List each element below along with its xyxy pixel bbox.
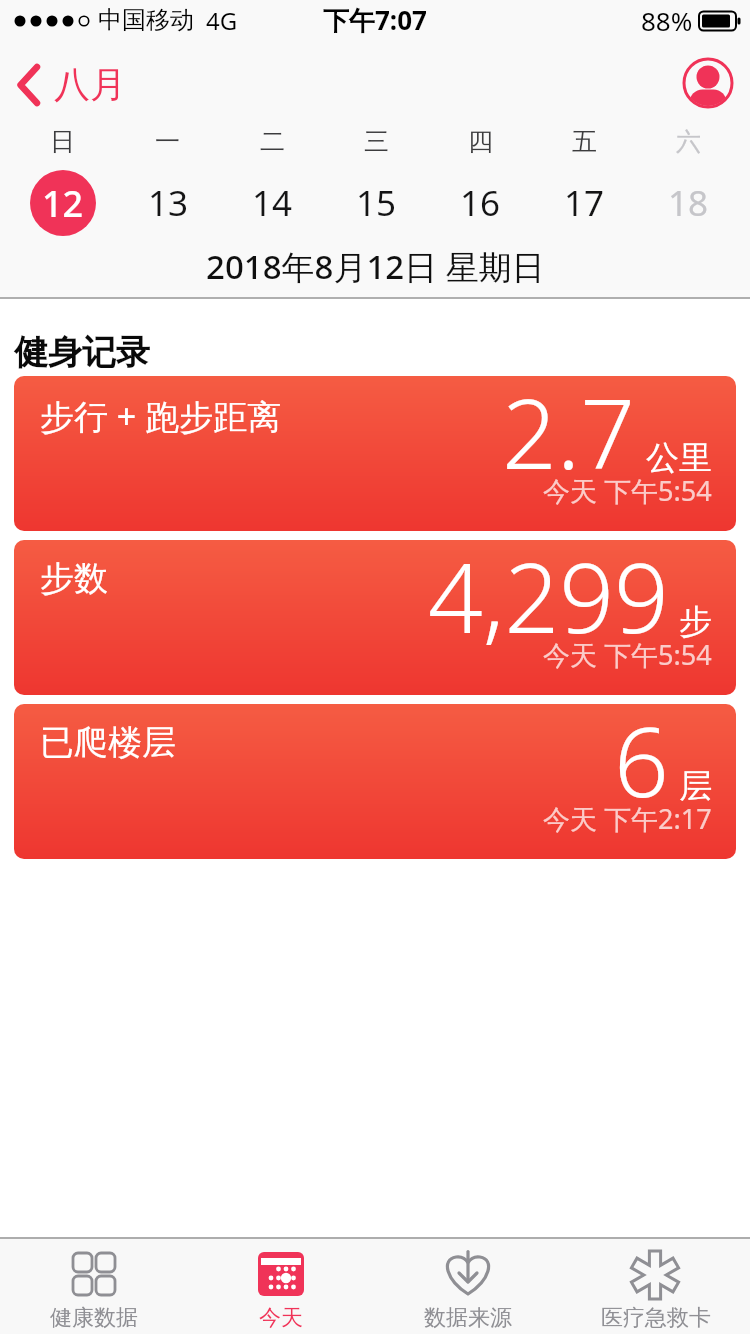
staticText: 二 [260, 126, 285, 157]
button[interactable]: 12 [30, 170, 96, 236]
button[interactable]: 步数 [14, 540, 736, 695]
staticText: 今天 下午5:54 [543, 472, 712, 509]
staticText: 健身记录 [14, 331, 150, 374]
button[interactable]: 数据来源 [374, 1239, 562, 1334]
button[interactable]: 17 [551, 170, 617, 236]
staticText: 4,299 [428, 540, 669, 661]
staticText: 步数 [40, 557, 108, 600]
staticText: 已爬楼层 [40, 721, 176, 764]
staticText: 八月 [54, 62, 126, 107]
button[interactable] [682, 57, 734, 109]
staticText: 下午7:07 [323, 2, 427, 38]
staticText: 中国移动 [98, 5, 194, 35]
staticText: 13 [148, 179, 189, 227]
button[interactable]: 健康数据 [0, 1239, 187, 1334]
staticText: 步 [679, 601, 712, 643]
staticText: 四 [468, 126, 493, 157]
staticText: 五 [572, 126, 597, 157]
staticText: 一 [155, 126, 180, 157]
staticText: 14 [252, 179, 293, 227]
button[interactable]: 18 [655, 170, 721, 236]
staticText: 今天 下午5:54 [543, 636, 712, 673]
staticText: 16 [460, 179, 501, 227]
staticText: 6 [614, 704, 669, 825]
staticText: 今天 [259, 1304, 303, 1332]
staticText: 医疗急救卡 [601, 1304, 711, 1332]
button[interactable]: 已爬楼层 [14, 704, 736, 859]
staticText: 三 [364, 126, 389, 157]
staticText: 4G [206, 4, 238, 37]
staticText: 数据来源 [424, 1304, 512, 1332]
staticText: 88% [641, 3, 693, 38]
button[interactable]: 16 [447, 170, 513, 236]
button[interactable]: 今天 [187, 1239, 374, 1334]
staticText: 健康数据 [50, 1304, 138, 1332]
button[interactable]: 14 [239, 170, 305, 236]
button[interactable]: 15 [343, 170, 409, 236]
staticText: 12 [42, 179, 84, 228]
button[interactable]: 13 [135, 170, 201, 236]
staticText: 2.7 [502, 376, 636, 497]
staticText: 层 [679, 765, 712, 807]
staticText: 15 [356, 179, 397, 227]
staticText: 步行 + 跑步距离 [40, 393, 282, 439]
button[interactable]: 八月 [17, 62, 126, 107]
staticText: 18 [668, 179, 709, 227]
button[interactable]: 医疗急救卡 [562, 1239, 750, 1334]
staticText: 2018年8月12日 星期日 [206, 244, 545, 289]
staticText: 17 [564, 179, 605, 227]
staticText: 今天 下午2:17 [543, 800, 712, 837]
staticText: 公里 [646, 437, 712, 479]
button[interactable]: 步行 + 跑步距离 [14, 376, 736, 531]
staticText: 六 [676, 126, 701, 157]
staticText: 日 [50, 126, 75, 157]
